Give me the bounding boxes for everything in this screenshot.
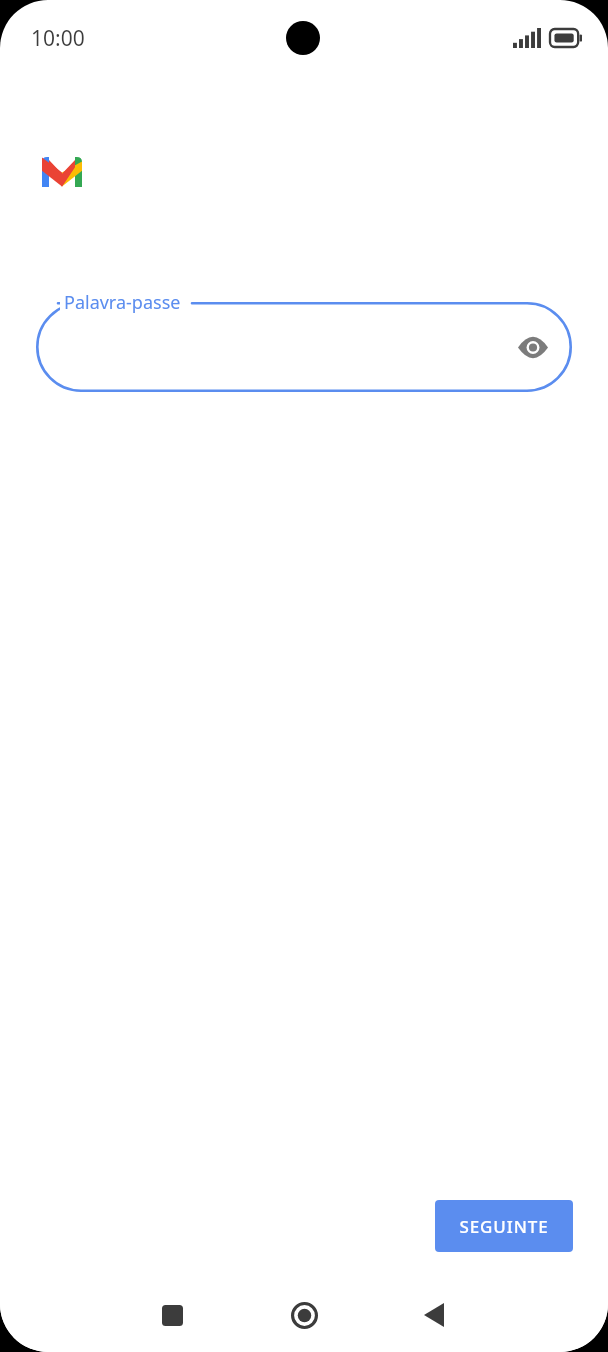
button[interactable]: Palavra-passe [36, 302, 572, 392]
button[interactable]: Voltar [408, 1289, 460, 1341]
button[interactable] [36, 146, 88, 198]
button[interactable]: Recentes [146, 1289, 198, 1341]
button[interactable]: Mostrar palavra-passe [510, 324, 556, 370]
staticText: Palavra-passe [64, 290, 181, 315]
button[interactable]: Início [278, 1289, 330, 1341]
button[interactable]: SEGUINTE [435, 1200, 573, 1252]
staticText: 10:00 [31, 24, 85, 53]
staticText: SEGUINTE [459, 1215, 549, 1238]
